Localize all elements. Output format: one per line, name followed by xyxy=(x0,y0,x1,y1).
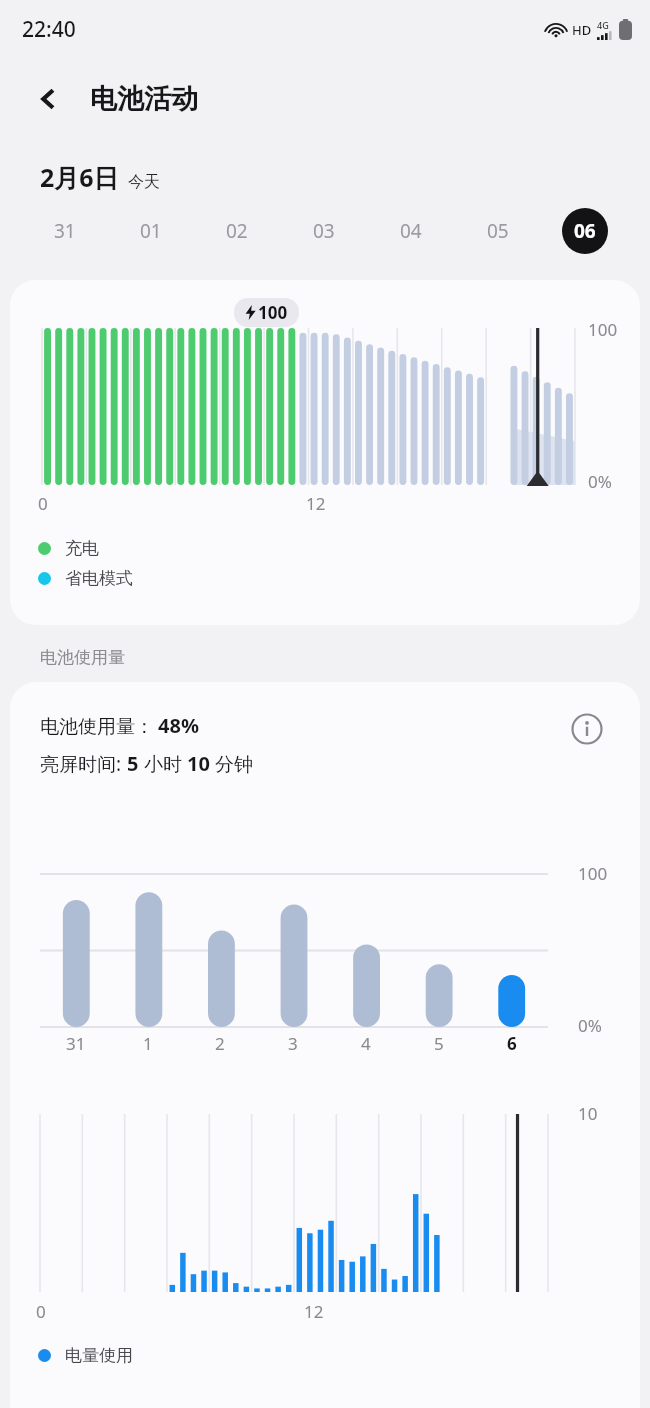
staticText: 100 xyxy=(258,301,288,324)
staticText: 06 xyxy=(574,218,596,244)
button[interactable]: 04 xyxy=(367,194,454,268)
staticText: 省电模式 xyxy=(65,568,133,589)
staticText: 电池活动 xyxy=(90,82,198,116)
staticText: 4 xyxy=(361,1032,371,1055)
staticText: 3 xyxy=(288,1032,298,1055)
button[interactable]: 03 xyxy=(280,194,367,268)
button[interactable]: 06 xyxy=(541,194,628,268)
staticText: 03 xyxy=(313,218,335,244)
button[interactable]: Back xyxy=(26,76,72,122)
button[interactable]: Info xyxy=(566,708,608,750)
button[interactable]: 01 xyxy=(108,194,194,268)
staticText: 电池使用量 xyxy=(40,647,125,668)
staticText: 05 xyxy=(487,218,509,244)
staticText: 12 xyxy=(306,492,326,515)
staticText: 充电 xyxy=(65,538,99,559)
button[interactable]: 31 xyxy=(22,194,108,268)
staticText: 02 xyxy=(226,218,248,244)
staticText: 10 xyxy=(187,750,210,777)
staticText: 100 xyxy=(588,318,618,341)
staticText: 1 xyxy=(143,1032,153,1055)
staticText: 48% xyxy=(158,712,199,739)
staticText: 5 xyxy=(434,1032,444,1055)
staticText: 0% xyxy=(588,470,612,493)
button[interactable]: 02 xyxy=(194,194,280,268)
staticText: 分钟 xyxy=(210,751,253,777)
staticText: 0 xyxy=(38,492,48,515)
staticText: 22:40 xyxy=(22,15,76,44)
staticText: 电量使用 xyxy=(65,1345,133,1366)
staticText: 04 xyxy=(400,218,422,244)
staticText: 6 xyxy=(507,1032,517,1055)
staticText: 31 xyxy=(66,1032,86,1055)
staticText: 12 xyxy=(304,1300,324,1323)
staticText: 小时 xyxy=(139,751,187,777)
staticText: 5 xyxy=(127,750,139,777)
staticText: 2月6日 xyxy=(40,160,119,194)
staticText: 01 xyxy=(140,218,162,244)
staticText: 0 xyxy=(36,1300,46,1323)
button[interactable]: 05 xyxy=(454,194,541,268)
staticText: 今天 xyxy=(128,172,160,192)
staticText: 31 xyxy=(54,218,76,244)
staticText: 4G xyxy=(597,19,609,31)
staticText: 亮屏时间: xyxy=(40,751,127,777)
staticText: 100 xyxy=(578,862,608,885)
staticText: 电池使用量： xyxy=(40,715,154,739)
button[interactable]: 100 xyxy=(10,280,640,625)
staticText: HD xyxy=(572,21,592,39)
staticText: 0% xyxy=(578,1014,602,1037)
staticText: 10 xyxy=(578,1102,598,1125)
staticText: 2 xyxy=(215,1032,225,1055)
